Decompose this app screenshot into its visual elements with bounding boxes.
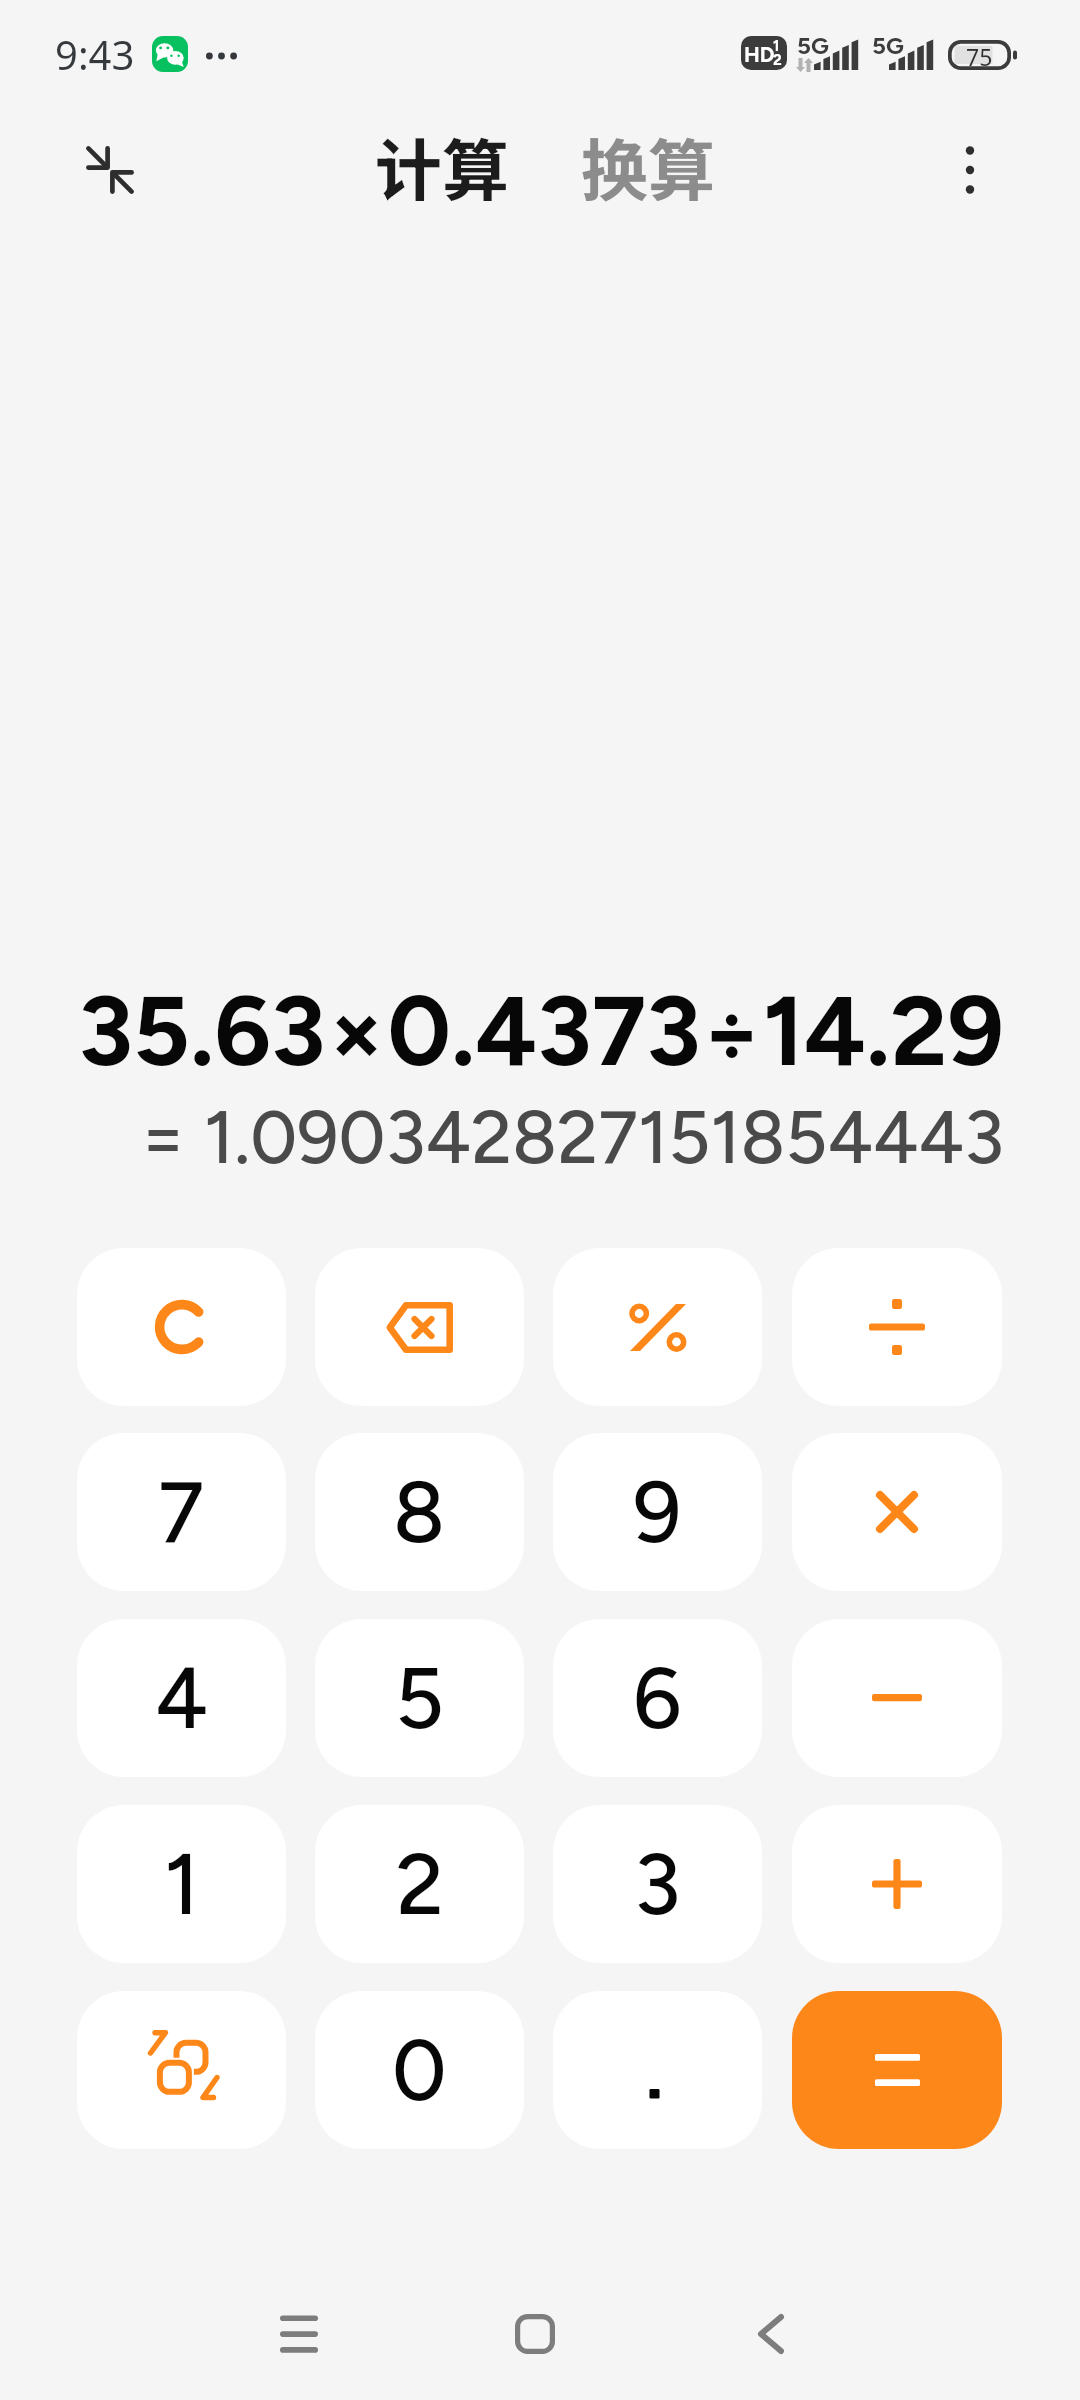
- button[interactable]: Scientific: [77, 1991, 286, 2149]
- button[interactable]: 0: [315, 1991, 524, 2149]
- staticText: = 1.090342827151854443: [140, 1094, 1004, 1182]
- button[interactable]: 6: [553, 1619, 762, 1777]
- button[interactable]: 7: [77, 1433, 286, 1591]
- button[interactable]: 5: [315, 1619, 524, 1777]
- button[interactable]: Percent: [553, 1248, 762, 1406]
- button[interactable]: 计算: [369, 103, 515, 228]
- button[interactable]: 4: [77, 1619, 286, 1777]
- staticText: 4: [155, 1647, 209, 1749]
- button[interactable]: Minus: [792, 1619, 1002, 1777]
- button[interactable]: Divide: [792, 1248, 1002, 1406]
- staticText: 8: [393, 1461, 446, 1563]
- staticText: 换算: [581, 117, 715, 214]
- button[interactable]: 9: [553, 1433, 762, 1591]
- staticText: 75: [966, 41, 993, 71]
- staticText: 2: [396, 1833, 444, 1935]
- button[interactable]: 换算: [575, 103, 721, 228]
- button[interactable]: Plus: [792, 1805, 1002, 1963]
- staticText: 计算: [375, 117, 509, 214]
- staticText: 3: [634, 1833, 681, 1935]
- staticText: 7: [158, 1461, 205, 1563]
- button[interactable]: 1: [77, 1805, 286, 1963]
- button[interactable]: 8: [315, 1433, 524, 1591]
- button[interactable]: Back: [701, 2264, 841, 2400]
- button[interactable]: Recents: [229, 2264, 369, 2400]
- staticText: 1: [773, 37, 780, 55]
- staticText: HD: [744, 42, 775, 67]
- button[interactable]: Multiply: [792, 1433, 1002, 1591]
- button[interactable]: Clear: [77, 1248, 286, 1406]
- staticText: 5G: [872, 31, 904, 60]
- staticText: 5G: [797, 31, 829, 60]
- button[interactable]: Backspace: [315, 1248, 524, 1406]
- staticText: 0: [392, 2019, 447, 2121]
- button[interactable]: Collapse: [62, 122, 158, 218]
- staticText: 1: [164, 1833, 200, 1935]
- button[interactable]: More options: [922, 122, 1018, 218]
- button[interactable]: 2: [315, 1805, 524, 1963]
- button[interactable]: Equals: [792, 1991, 1002, 2149]
- button[interactable]: 3: [553, 1805, 762, 1963]
- staticText: 9: [633, 1461, 682, 1563]
- button[interactable]: Home: [465, 2264, 605, 2400]
- staticText: 9:43: [55, 27, 135, 81]
- staticText: 5: [395, 1647, 444, 1749]
- button[interactable]: Decimal point: [553, 1991, 762, 2149]
- staticText: 6: [633, 1647, 682, 1749]
- staticText: 2: [773, 51, 782, 69]
- staticText: 35.63×0.4373÷14.29: [78, 972, 1004, 1090]
